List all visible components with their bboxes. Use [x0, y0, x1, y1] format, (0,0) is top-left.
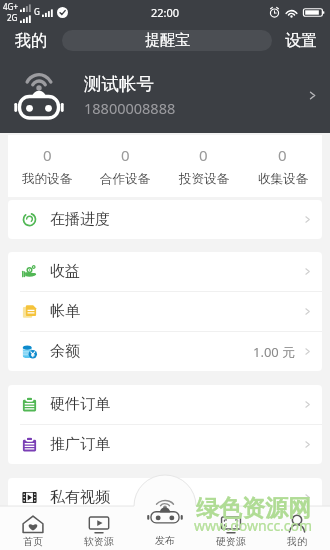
staticText: 投资设备	[179, 171, 229, 187]
button[interactable]: 余额	[8, 332, 322, 371]
staticText: 我的	[15, 31, 47, 51]
staticText: 余额	[50, 342, 80, 361]
staticText: 测试帐号	[84, 73, 154, 95]
button[interactable]: 帐单	[8, 292, 322, 331]
staticText: 绿色资源网	[196, 494, 311, 523]
button[interactable]: 0	[243, 135, 322, 197]
staticText: G	[34, 6, 40, 17]
staticText: 4G+	[3, 1, 18, 12]
staticText: 软资源	[84, 535, 114, 548]
staticText: 收益	[50, 262, 80, 281]
button[interactable]: 设置	[272, 24, 330, 57]
staticText: 提醒宝	[145, 31, 190, 50]
staticText: 设置	[285, 31, 317, 51]
staticText: 0	[121, 145, 130, 165]
staticText: 我的	[287, 535, 307, 548]
staticText: 0	[43, 145, 52, 165]
button[interactable]: 发布	[132, 506, 198, 550]
button[interactable]: 硬件订单	[8, 385, 322, 424]
staticText: 帐单	[50, 302, 80, 321]
button[interactable]: 硬资源	[198, 506, 264, 550]
staticText: 在播进度	[50, 210, 110, 229]
button[interactable]: 测试帐号	[0, 57, 330, 133]
button[interactable]: 我的	[264, 506, 330, 550]
staticText: 推广订单	[50, 435, 110, 454]
button[interactable]: 我的	[0, 24, 62, 57]
staticText: 18800008888	[84, 98, 176, 118]
staticText: 1.00 元	[253, 343, 296, 361]
staticText: 收集设备	[258, 171, 308, 187]
staticText: 我的设备	[22, 171, 72, 187]
staticText: 发布	[155, 534, 175, 545]
button[interactable]: 首页	[0, 506, 66, 550]
staticText: 私有视频	[50, 488, 110, 507]
button[interactable]: 推广订单	[8, 425, 322, 464]
button[interactable]: 0	[86, 135, 164, 197]
staticText: 首页	[23, 535, 43, 548]
button[interactable]: 私有视频	[8, 478, 322, 517]
button[interactable]: 在播进度	[8, 200, 322, 239]
button[interactable]: 提醒宝	[62, 30, 272, 51]
staticText: 0	[278, 145, 287, 165]
button[interactable]: 0	[164, 135, 243, 197]
staticText: 硬件订单	[50, 395, 110, 414]
button[interactable]: 软资源	[66, 506, 132, 550]
staticText: 硬资源	[216, 535, 246, 548]
staticText: www.downcc.com	[194, 516, 313, 535]
button[interactable]: 收益	[8, 252, 322, 291]
staticText: 22:00	[151, 5, 180, 20]
staticText: 2G	[7, 12, 18, 23]
button[interactable]: 0	[8, 135, 86, 197]
staticText: 合作设备	[100, 171, 150, 187]
staticText: 0	[199, 145, 208, 165]
